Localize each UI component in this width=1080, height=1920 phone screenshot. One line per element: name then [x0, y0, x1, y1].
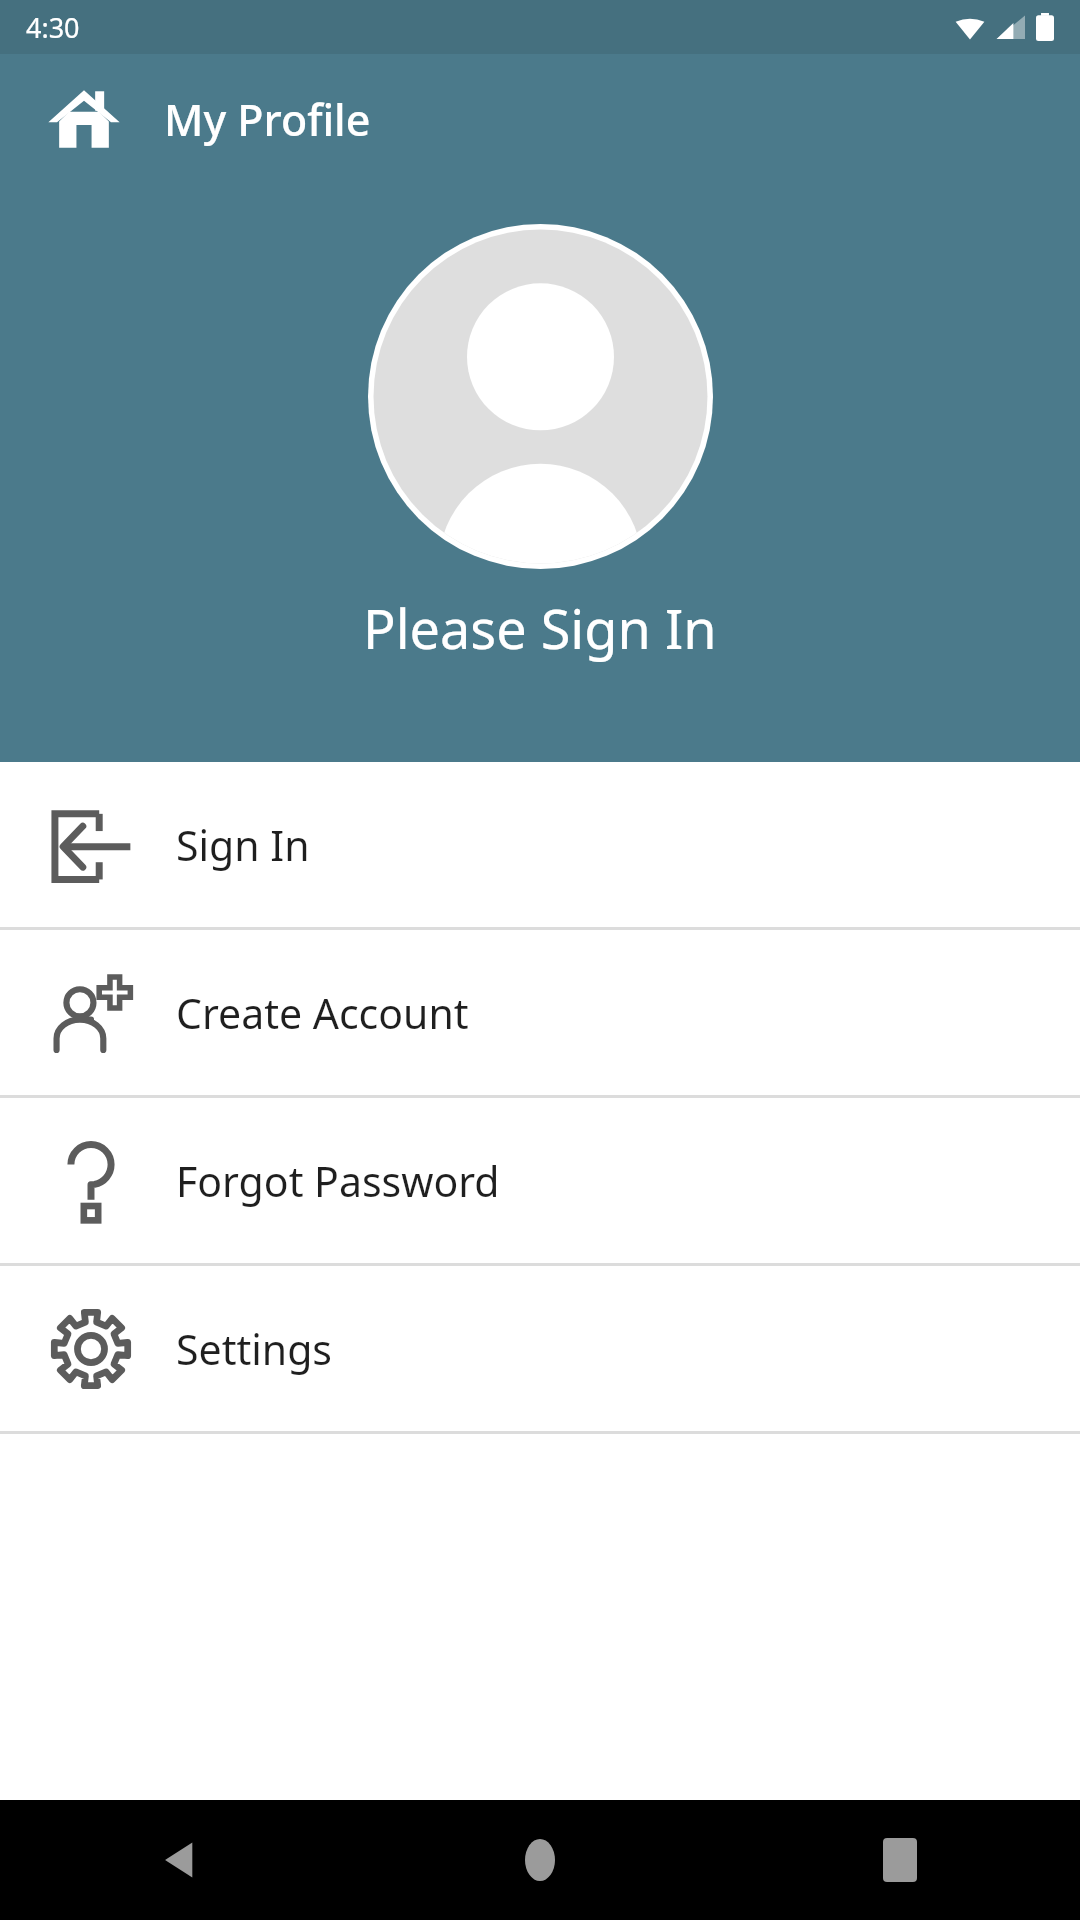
button[interactable]: Recent apps [720, 1800, 1080, 1920]
button[interactable]: Home [360, 1800, 720, 1920]
staticText: 4:30 [26, 9, 80, 46]
button[interactable]: Settings [0, 1266, 1080, 1431]
button[interactable]: Create Account [0, 930, 1080, 1095]
staticText: Forgot Password [176, 1153, 500, 1209]
staticText: My Profile [164, 90, 371, 149]
button[interactable]: Home [40, 75, 128, 163]
staticText: Create Account [176, 985, 469, 1041]
button[interactable]: Sign In [0, 762, 1080, 927]
staticText: Settings [176, 1321, 333, 1377]
staticText: Sign In [176, 817, 310, 873]
staticText: Please Sign In [363, 591, 717, 665]
button[interactable]: Back [0, 1800, 360, 1920]
button[interactable]: Forgot Password [0, 1098, 1080, 1263]
